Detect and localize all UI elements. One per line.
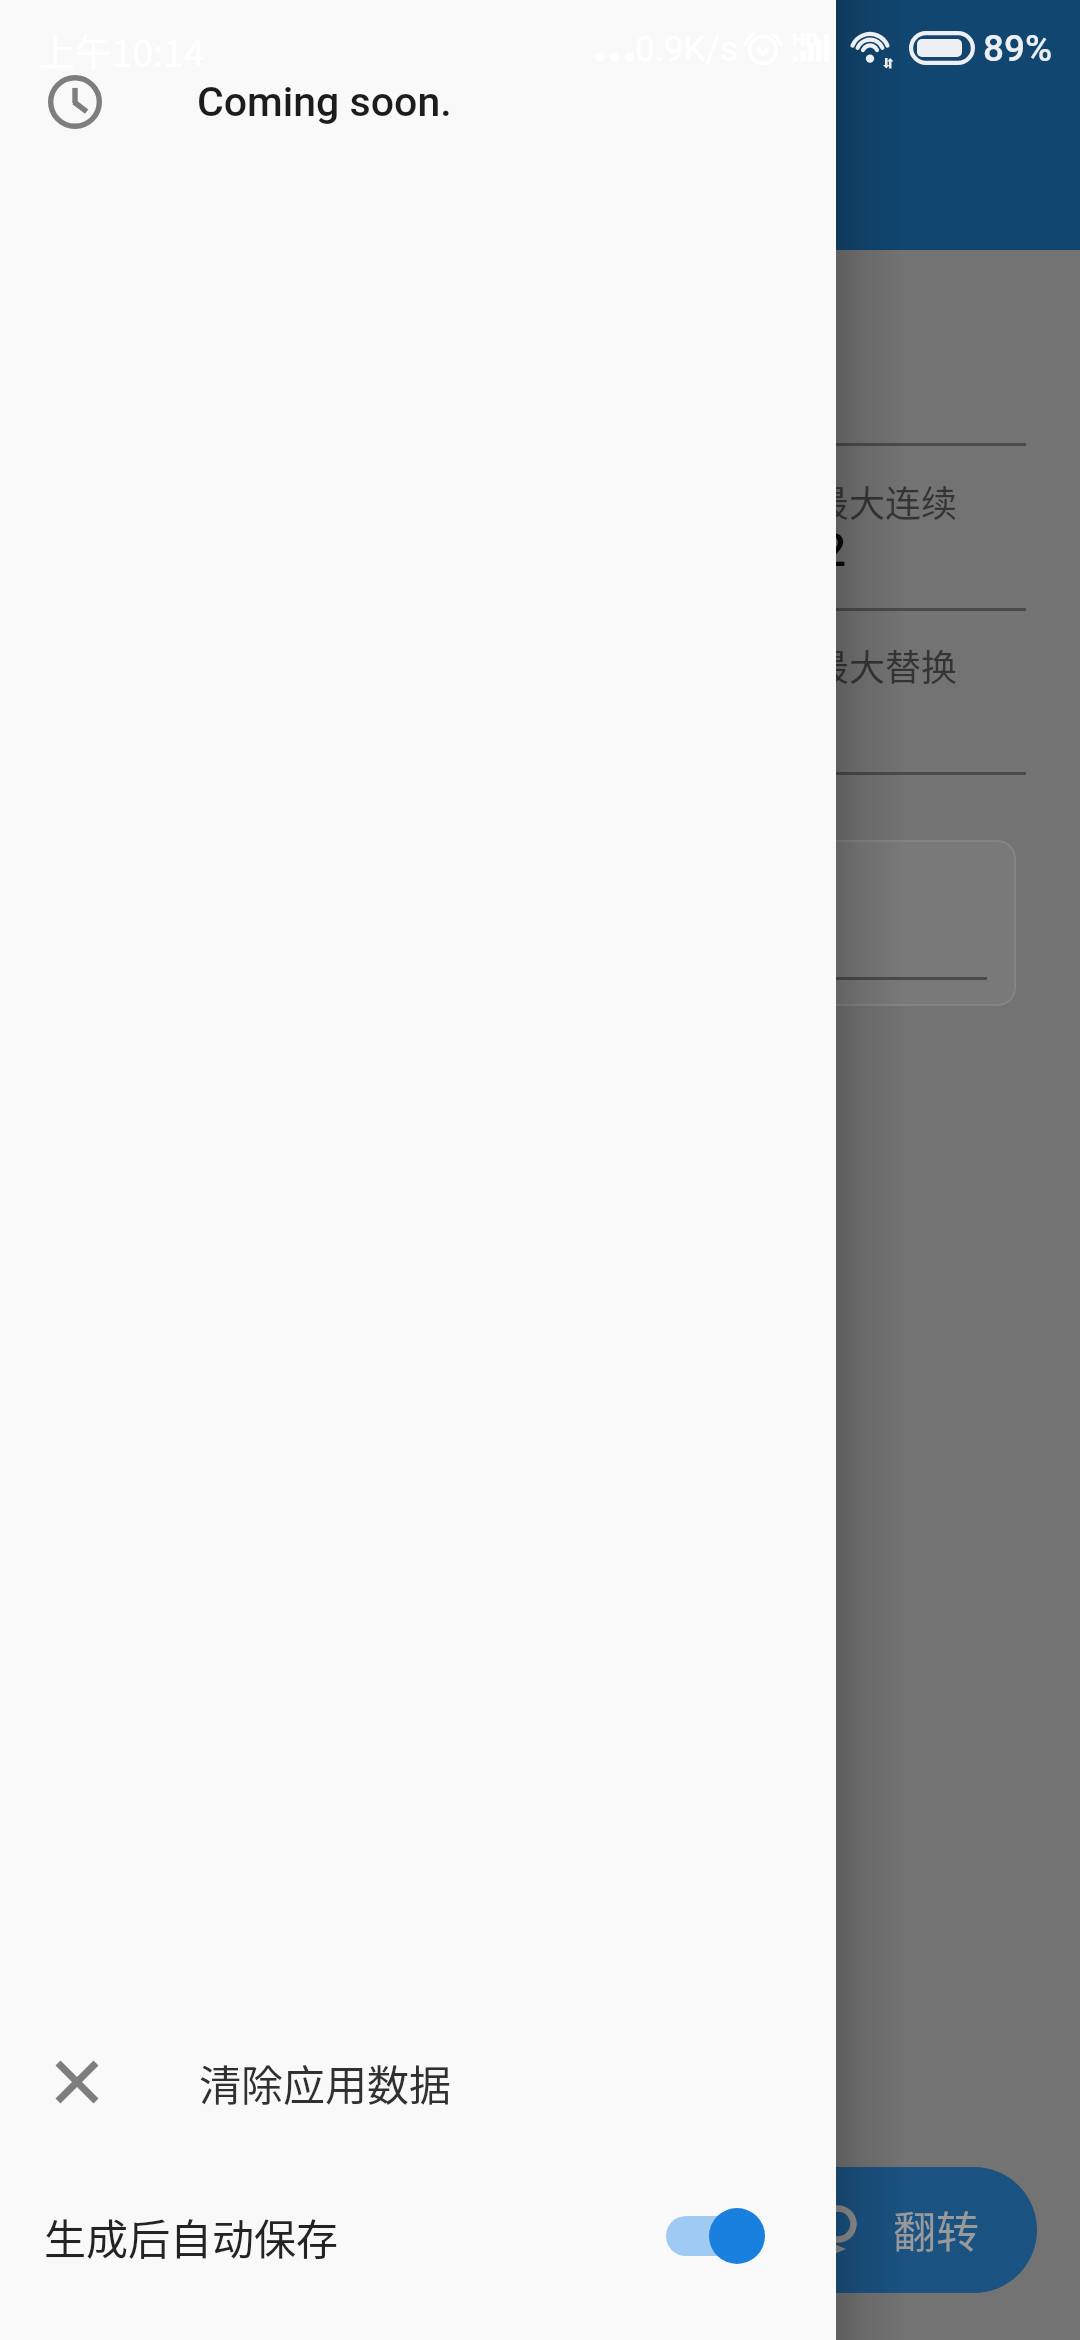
button[interactable]: 生成后自动保存 (0, 2176, 836, 2296)
staticText: Coming soon. (197, 78, 452, 126)
staticText: 上午10:14 (38, 24, 205, 78)
button[interactable]: Clear app data (0, 2022, 836, 2142)
staticText: 生成后自动保存 (44, 2206, 339, 2267)
other: Schedule (48, 75, 102, 129)
staticText: 翻转 (893, 2198, 979, 2260)
staticText: 2 (820, 523, 847, 577)
staticText: 最大替换 (813, 639, 958, 691)
staticText: 清除应用数据 (199, 2052, 452, 2113)
staticText: 89% (983, 27, 1053, 70)
other: Clear app data (58, 2063, 96, 2101)
staticText: 最大连续 (813, 475, 958, 527)
button[interactable]: Schedule (0, 44, 836, 160)
button[interactable]: 翻转 (690, 2167, 1037, 2293)
